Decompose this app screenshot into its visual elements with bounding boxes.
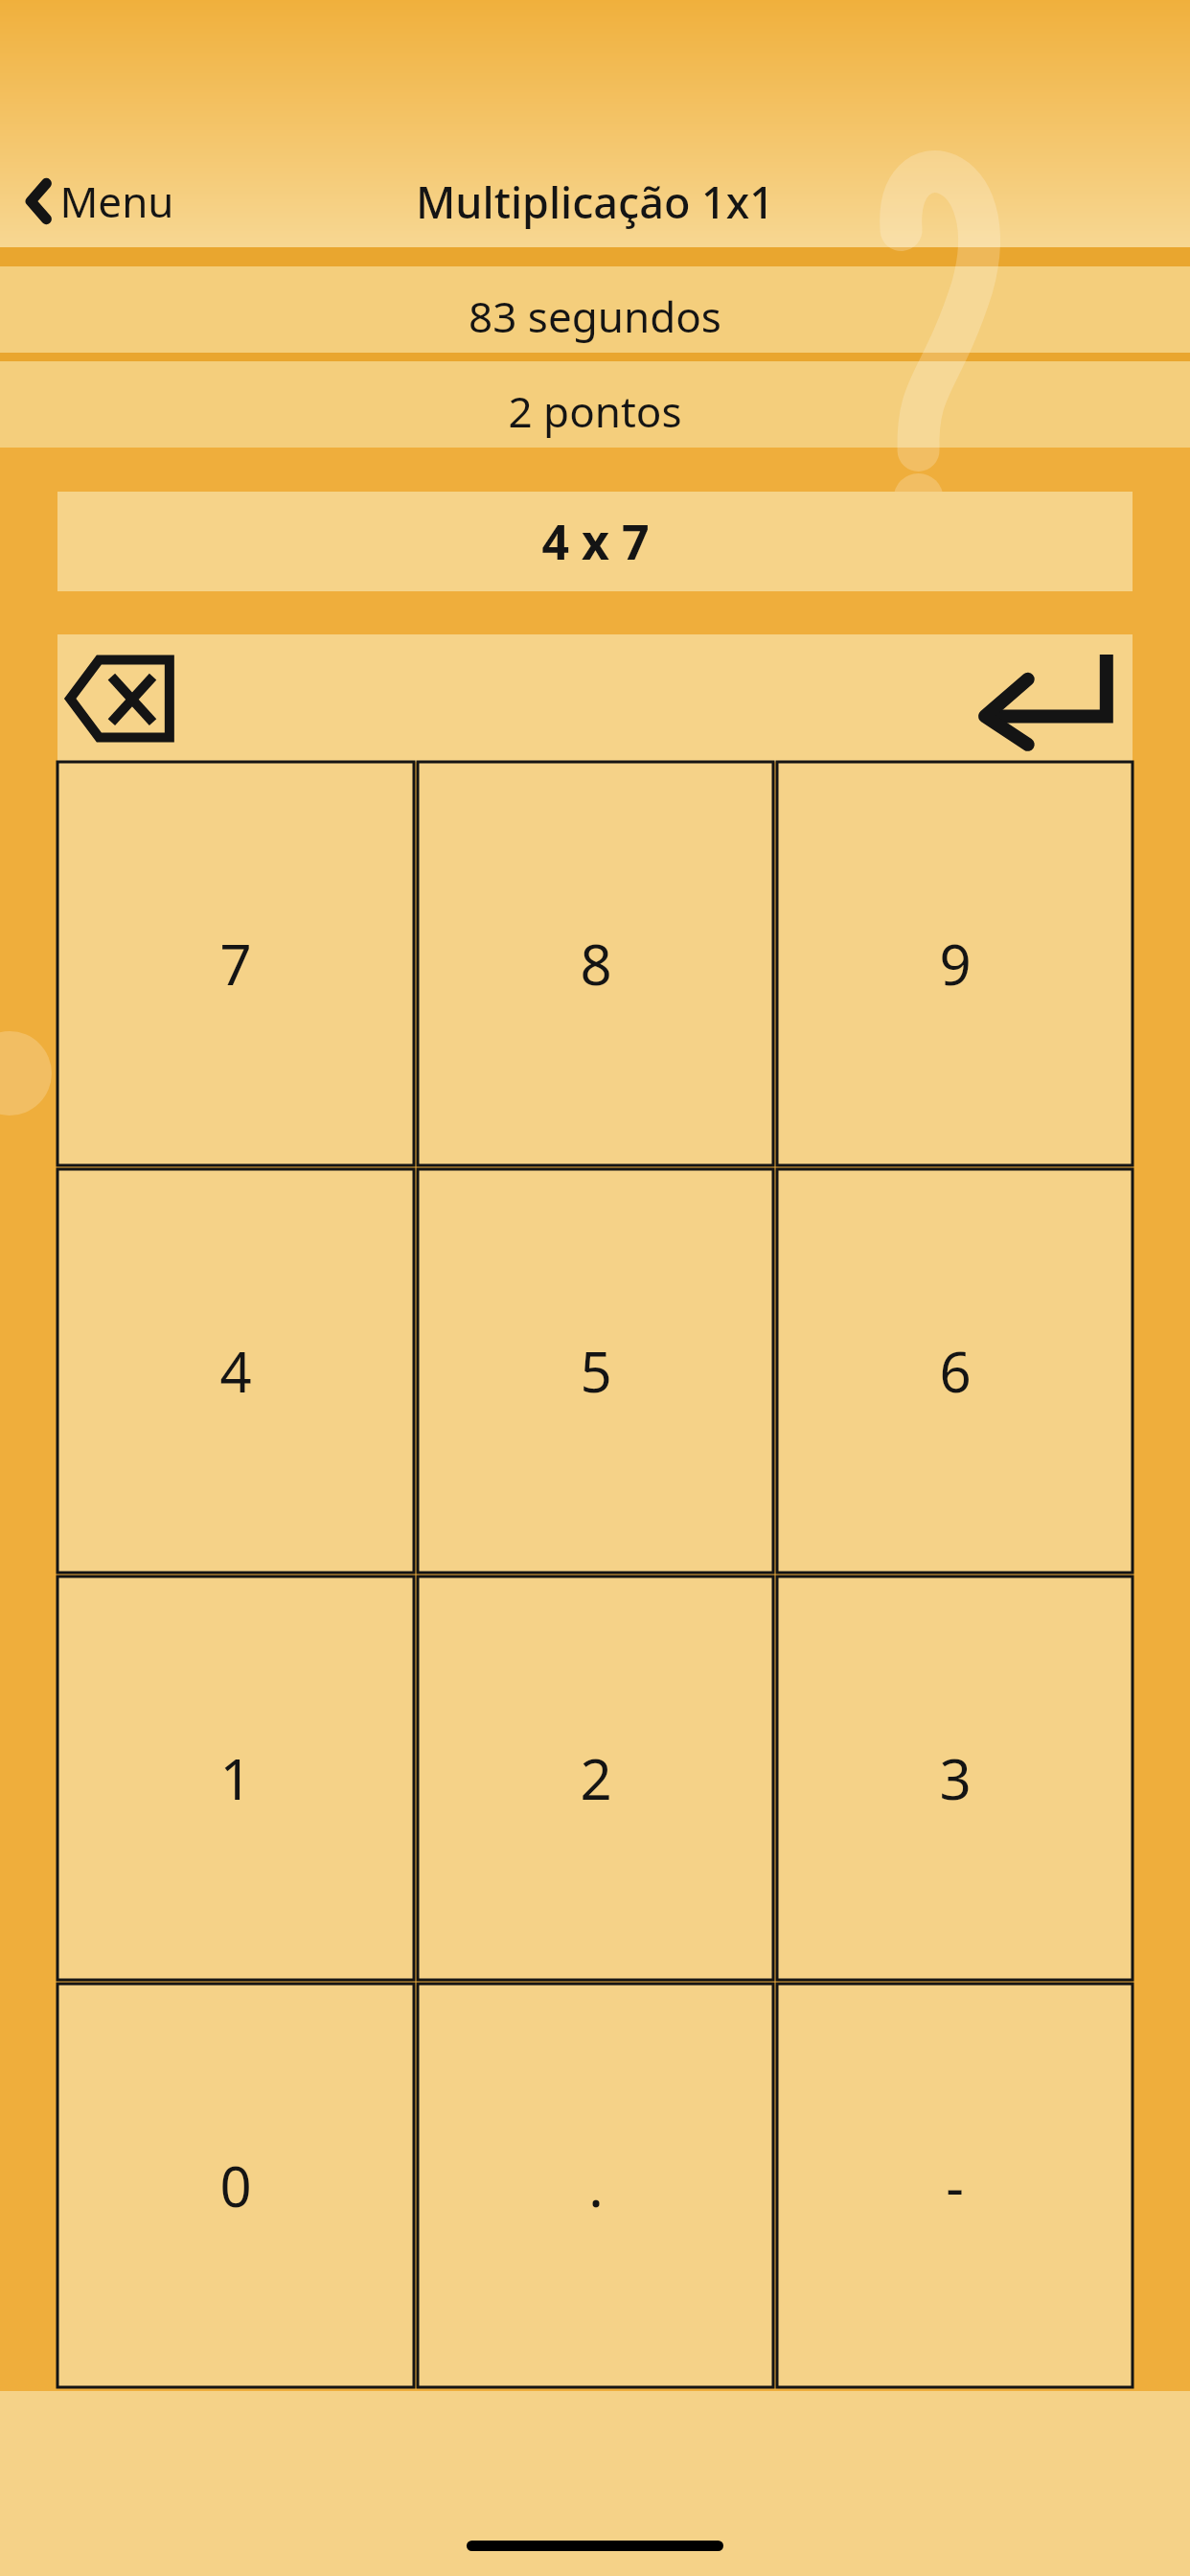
staticText: 5 <box>580 1333 612 1409</box>
staticText: 7 <box>219 926 252 1001</box>
staticText: Menu <box>59 172 174 230</box>
button[interactable]: Enter <box>968 641 1121 756</box>
staticText: Multiplicação 1x1 <box>0 172 1190 231</box>
button[interactable]: - <box>777 1984 1133 2387</box>
button[interactable]: 9 <box>777 762 1133 1165</box>
button[interactable]: Backspace <box>57 641 182 756</box>
staticText: 9 <box>939 926 972 1001</box>
staticText: 4 <box>219 1333 252 1409</box>
button[interactable]: 5 <box>418 1169 773 1573</box>
button[interactable]: 6 <box>777 1169 1133 1573</box>
staticText: . <box>588 2148 604 2223</box>
button[interactable]: 3 <box>777 1576 1133 1980</box>
staticText: 2 <box>580 1740 612 1816</box>
button[interactable]: 4 <box>57 1169 414 1573</box>
staticText: 8 <box>580 926 612 1001</box>
staticText: 6 <box>939 1333 972 1409</box>
button[interactable]: 8 <box>418 762 773 1165</box>
staticText: 1 <box>219 1740 252 1816</box>
staticText: 4 x 7 <box>541 509 650 574</box>
button[interactable]: 0 <box>57 1984 414 2387</box>
button[interactable]: Menu <box>17 165 182 238</box>
staticText: 83 segundos <box>0 287 1190 345</box>
button[interactable]: 1 <box>57 1576 414 1980</box>
staticText: - <box>946 2148 964 2223</box>
button[interactable]: 2 <box>418 1576 773 1980</box>
staticText: 2 pontos <box>0 382 1190 440</box>
staticText: 3 <box>939 1740 972 1816</box>
button[interactable]: 7 <box>57 762 414 1165</box>
staticText: 0 <box>219 2148 252 2223</box>
button[interactable]: . <box>418 1984 773 2387</box>
